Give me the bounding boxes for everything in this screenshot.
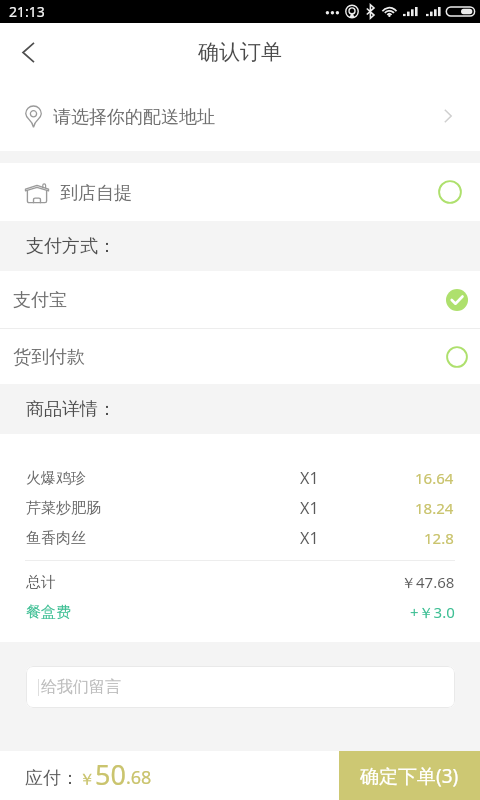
button[interactable]: Back bbox=[0, 23, 56, 81]
staticText: 18.24 bbox=[415, 498, 454, 518]
staticText: 芹菜炒肥肠 bbox=[26, 499, 101, 518]
staticText: ￥47.68 bbox=[401, 572, 455, 592]
staticText: 50 bbox=[95, 756, 126, 793]
staticText: X1 bbox=[300, 527, 319, 549]
staticText: 12.8 bbox=[424, 528, 454, 548]
button[interactable]: 货到付款 bbox=[0, 329, 480, 384]
staticText: 16.64 bbox=[415, 468, 454, 488]
staticText: ￥ bbox=[79, 770, 95, 790]
staticText: +￥3.0 bbox=[410, 602, 455, 622]
staticText: 餐盒费 bbox=[26, 603, 71, 622]
button[interactable]: 到店自提 bbox=[0, 163, 480, 221]
staticText: 确认订单 bbox=[198, 39, 282, 65]
button[interactable]: 确定下单(3) bbox=[339, 751, 480, 800]
staticText: 请选择你的配送地址 bbox=[53, 106, 215, 129]
button[interactable]: 支付宝 bbox=[0, 271, 480, 328]
staticText: .68 bbox=[126, 765, 152, 790]
staticText: 货到付款 bbox=[13, 346, 85, 369]
button[interactable]: 给我们留言 bbox=[26, 666, 455, 708]
staticText: 支付宝 bbox=[13, 289, 67, 312]
button[interactable]: 请选择你的配送地址 bbox=[0, 81, 480, 151]
staticText: 到店自提 bbox=[60, 182, 132, 205]
staticText: 总计 bbox=[26, 573, 56, 592]
staticText: 鱼香肉丝 bbox=[26, 529, 86, 548]
staticText: X1 bbox=[300, 467, 319, 489]
staticText: X1 bbox=[300, 497, 319, 519]
staticText: 给我们留言 bbox=[41, 677, 121, 697]
staticText: 商品详情： bbox=[26, 398, 116, 421]
staticText: 支付方式： bbox=[26, 235, 116, 258]
staticText: 21:13 bbox=[9, 2, 45, 21]
staticText: 应付： bbox=[25, 767, 79, 790]
staticText: 火爆鸡珍 bbox=[26, 469, 86, 488]
staticText: 确定下单(3) bbox=[360, 763, 459, 789]
